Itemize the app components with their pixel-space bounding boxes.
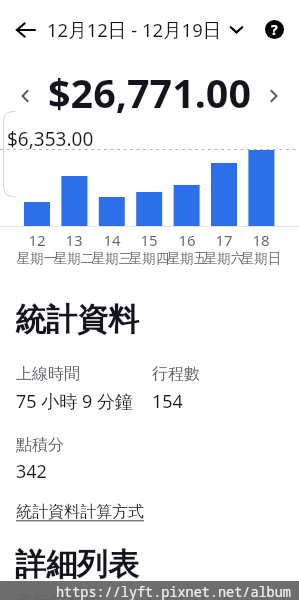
staticText: 詳細列表 bbox=[15, 545, 139, 584]
button[interactable]: 統計資料計算方式 bbox=[16, 502, 144, 522]
staticText: 星期一 bbox=[12, 250, 62, 267]
button[interactable]: Help bbox=[256, 11, 292, 47]
staticText: 上線時間 bbox=[16, 364, 80, 384]
staticText: 星期五 bbox=[162, 250, 212, 267]
staticText: https://lyft.pixnet.net/album bbox=[56, 583, 291, 600]
staticText: 統計資料計算方式 bbox=[16, 502, 144, 522]
staticText: 星期三 bbox=[87, 250, 137, 267]
staticText: 星期四 bbox=[124, 250, 174, 267]
staticText: 15 bbox=[129, 230, 169, 250]
staticText: 17 bbox=[204, 230, 244, 250]
staticText: 統計資料 bbox=[15, 300, 139, 339]
staticText: 12月12日 - 12月19日 bbox=[47, 17, 222, 42]
staticText: $26,771.00 bbox=[0, 66, 299, 120]
staticText: 12 bbox=[17, 230, 57, 250]
staticText: 星期六 bbox=[199, 250, 249, 267]
staticText: 13 bbox=[54, 230, 94, 250]
button[interactable]: 12月12日 - 12月19日 bbox=[47, 14, 243, 44]
staticText: 342 bbox=[16, 459, 47, 484]
staticText: 18 bbox=[241, 230, 281, 250]
staticText: 星期日 bbox=[236, 250, 286, 267]
staticText: $26,331.00 bbox=[145, 591, 232, 600]
staticText: ? bbox=[271, 20, 278, 39]
button[interactable]: Previous week bbox=[10, 81, 40, 111]
staticText: 運行程費用 bbox=[16, 591, 101, 600]
staticText: 14 bbox=[92, 230, 132, 250]
staticText: $6,353.00 bbox=[7, 126, 94, 152]
button[interactable]: Back bbox=[7, 12, 43, 48]
staticText: 154 bbox=[152, 389, 183, 414]
staticText: 16 bbox=[167, 230, 207, 250]
staticText: 點積分 bbox=[16, 435, 64, 455]
staticText: 行程數 bbox=[152, 364, 200, 384]
staticText: 星期二 bbox=[49, 250, 99, 267]
button[interactable]: Next week bbox=[259, 81, 289, 111]
button[interactable]: 運行程費用 bbox=[0, 591, 299, 600]
staticText: 75 小時 9 分鐘 bbox=[16, 389, 133, 414]
